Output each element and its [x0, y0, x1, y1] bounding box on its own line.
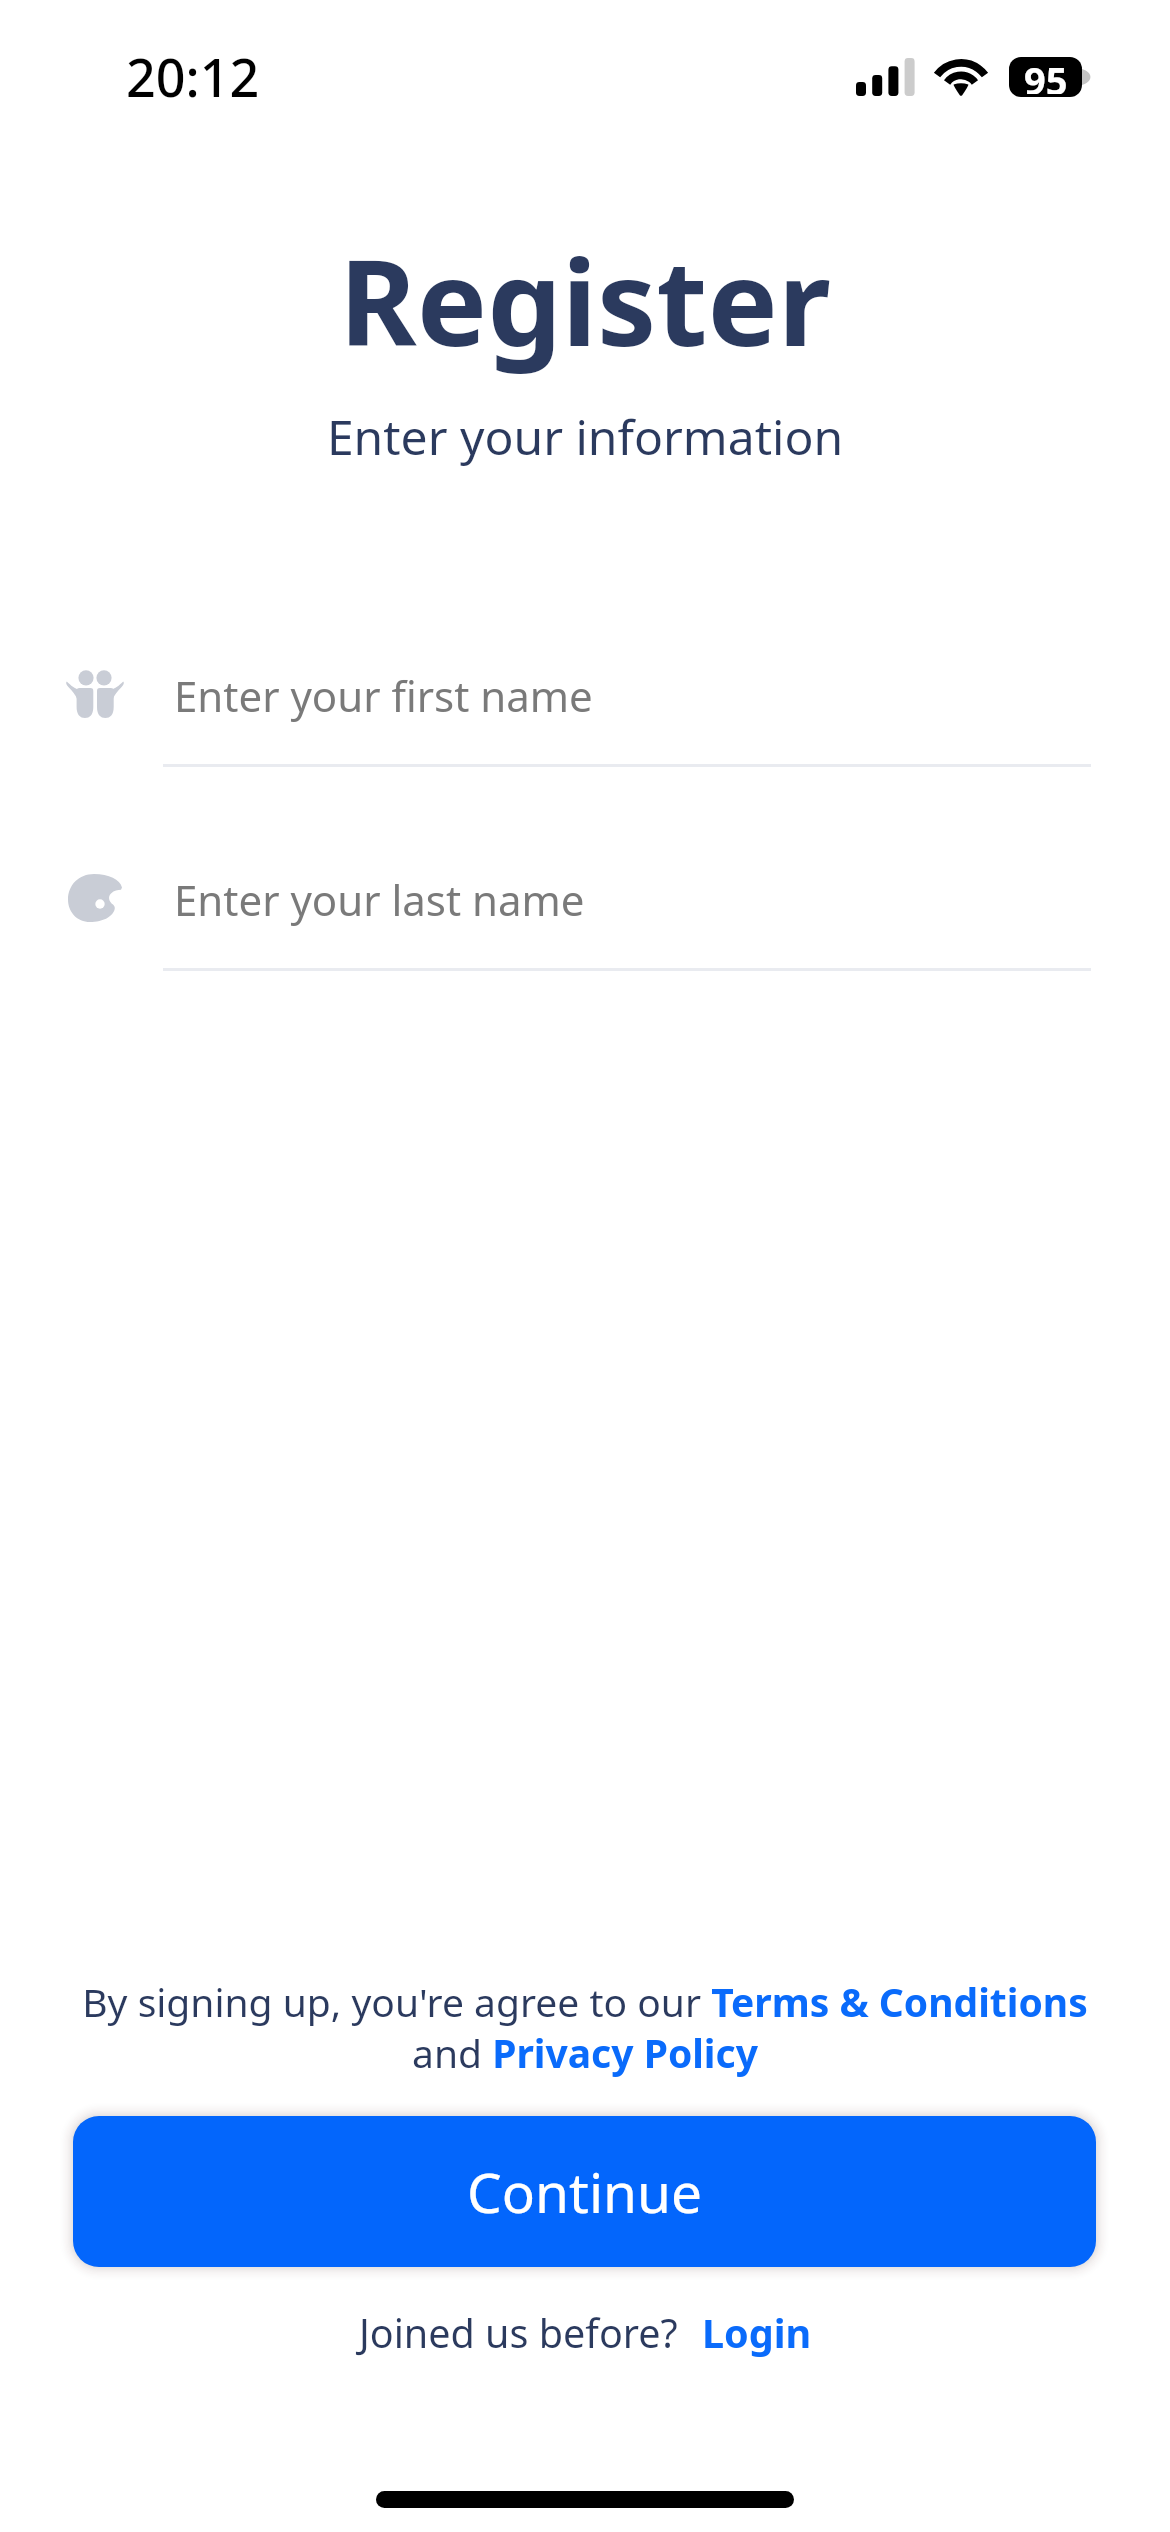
button[interactable]: Login [702, 2306, 812, 2360]
staticText: Joined us before? [359, 2306, 678, 2360]
staticText: Enter your last name [174, 871, 585, 928]
staticText: Login [702, 2306, 812, 2360]
staticText: 95 [1024, 57, 1068, 94]
staticText: 20:12 [126, 41, 260, 112]
button[interactable]: Palette [0, 866, 1170, 981]
staticText: Register [0, 220, 1170, 381]
button[interactable]: Person [0, 662, 1170, 777]
staticText: Continue [467, 2154, 703, 2229]
other: Person [66, 670, 124, 718]
staticText: Enter your first name [174, 667, 593, 724]
button[interactable]: Continue [73, 2116, 1096, 2267]
staticText: Enter your information [0, 404, 1170, 469]
other: Palette [68, 874, 122, 922]
staticText: By signing up, you're agree to our Terms… [60, 1975, 1110, 2080]
